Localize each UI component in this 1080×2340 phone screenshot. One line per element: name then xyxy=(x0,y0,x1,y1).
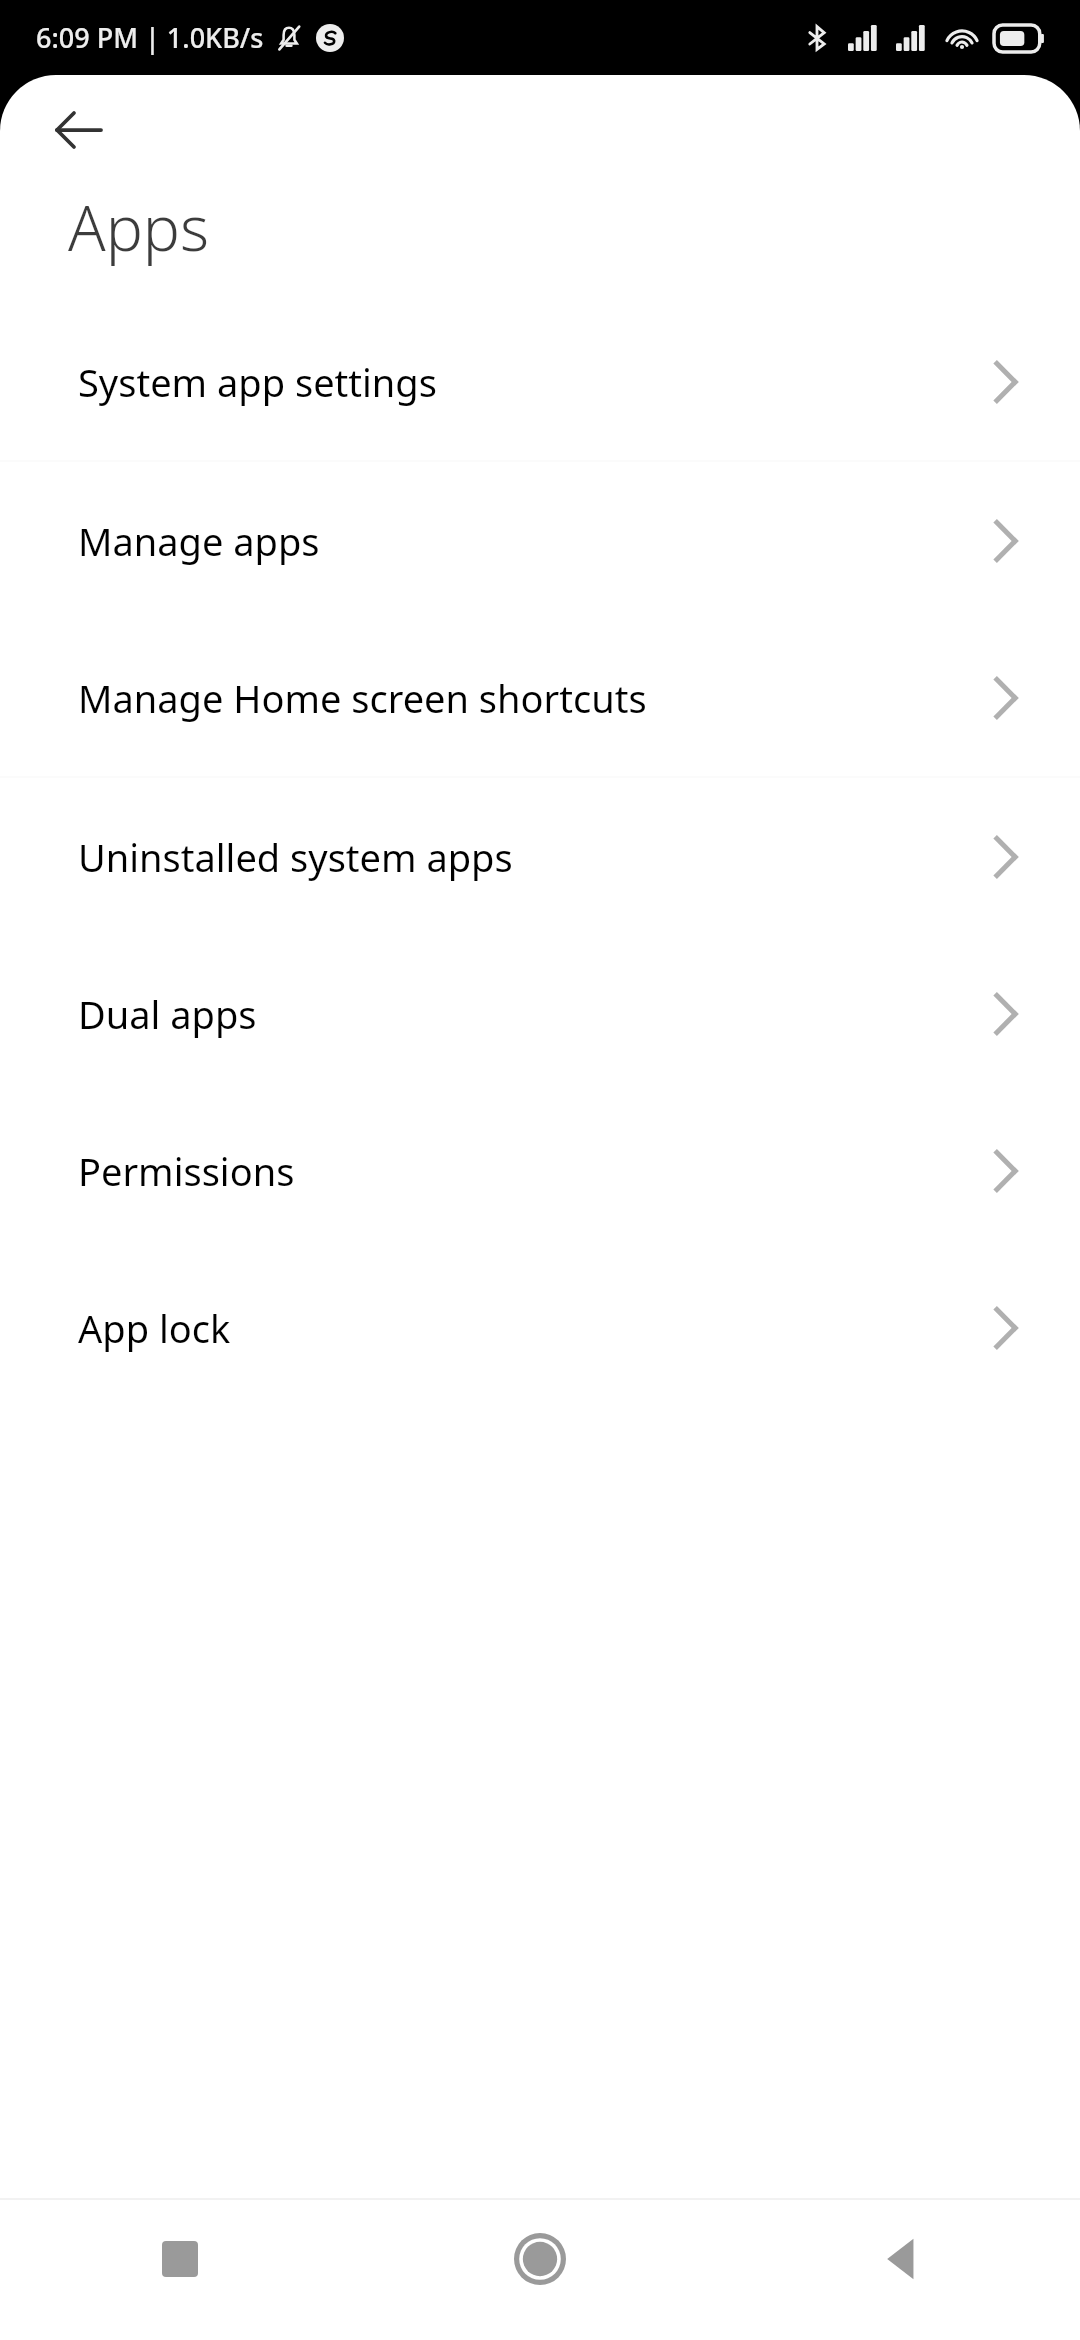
button[interactable]: Permissions xyxy=(0,1092,1080,1249)
staticText: System app settings xyxy=(78,356,437,408)
staticText: Uninstalled system apps xyxy=(78,831,513,883)
button[interactable]: Dual apps xyxy=(0,935,1080,1092)
staticText: Apps xyxy=(68,185,209,269)
button[interactable]: Home xyxy=(360,2200,720,2318)
button[interactable]: System app settings xyxy=(0,303,1080,460)
staticText: Manage apps xyxy=(78,515,320,567)
button[interactable]: Manage apps xyxy=(0,462,1080,619)
button[interactable]: Uninstalled system apps xyxy=(0,778,1080,935)
button[interactable]: Back xyxy=(720,2200,1080,2318)
staticText: Permissions xyxy=(78,1145,295,1197)
button[interactable]: App lock xyxy=(0,1249,1080,1406)
button[interactable]: Recents xyxy=(0,2200,360,2318)
button[interactable]: Manage Home screen shortcuts xyxy=(0,619,1080,776)
button[interactable]: Back xyxy=(44,95,114,165)
staticText: 6:09 PM | 1.0KB/s xyxy=(36,19,264,56)
staticText: Dual apps xyxy=(78,988,257,1040)
staticText: App lock xyxy=(78,1302,231,1354)
staticText: Manage Home screen shortcuts xyxy=(78,672,647,724)
